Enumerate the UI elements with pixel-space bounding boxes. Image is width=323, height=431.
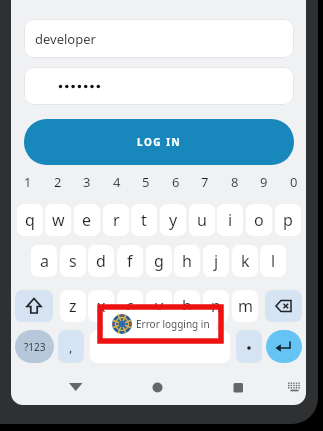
button[interactable]: x [88, 290, 114, 322]
button[interactable]: n [203, 290, 229, 322]
staticText: o [254, 209, 264, 231]
button[interactable]: 0 [280, 168, 306, 196]
staticText: 7 [201, 173, 209, 191]
staticText: 0 [290, 173, 298, 191]
staticText: i [228, 209, 233, 231]
button[interactable]: l [260, 245, 286, 277]
staticText: f [127, 250, 133, 272]
button[interactable] [15, 290, 53, 322]
button[interactable]: , [58, 330, 84, 363]
staticText: 5 [142, 173, 150, 191]
staticText: r [113, 209, 120, 231]
staticText: l [271, 250, 276, 272]
staticText: h [182, 250, 192, 272]
button[interactable]: Error logging in [103, 310, 217, 338]
staticText: e [82, 209, 92, 231]
button[interactable]: 4 [103, 168, 131, 196]
button[interactable]: 9 [250, 168, 278, 196]
staticText: s [69, 250, 77, 272]
button[interactable]: u [189, 204, 215, 236]
button[interactable]: r [103, 204, 129, 236]
staticText: 2 [54, 173, 62, 191]
button[interactable]: y [160, 204, 186, 236]
button[interactable]: LOG IN [24, 119, 294, 165]
button[interactable]: f [117, 245, 143, 277]
button[interactable]: k [232, 245, 258, 277]
button[interactable] [90, 330, 230, 363]
button[interactable]: 8 [221, 168, 249, 196]
button[interactable] [265, 290, 302, 322]
button[interactable]: m [232, 290, 258, 322]
staticText: g [154, 250, 164, 272]
staticText: 6 [172, 173, 180, 191]
button[interactable] [138, 375, 178, 401]
staticText: p [283, 209, 293, 231]
staticText: v [155, 295, 164, 317]
staticText: 1 [24, 173, 32, 191]
button[interactable]: h [174, 245, 200, 277]
button[interactable]: ?123 [15, 330, 54, 363]
staticText: z [69, 295, 77, 317]
button[interactable]: q [17, 204, 43, 236]
button[interactable] [236, 330, 262, 363]
staticText: 4 [113, 173, 121, 191]
staticText: n [211, 295, 221, 317]
button[interactable]: z [60, 290, 86, 322]
button[interactable]: p [275, 204, 301, 236]
staticText: developer [35, 30, 96, 48]
button[interactable]: t [131, 204, 157, 236]
staticText: 3 [83, 173, 91, 191]
button[interactable]: 6 [162, 168, 190, 196]
staticText: d [96, 250, 106, 272]
staticText: q [25, 209, 35, 231]
button[interactable]: v [146, 290, 172, 322]
button[interactable]: 3 [73, 168, 101, 196]
staticText: b [182, 295, 192, 317]
button[interactable]: a [31, 245, 57, 277]
staticText: x [97, 295, 106, 317]
button[interactable]: 7 [191, 168, 219, 196]
button[interactable]: d [88, 245, 114, 277]
button[interactable] [24, 67, 294, 105]
button[interactable]: 1 [14, 168, 42, 196]
button[interactable]: j [203, 245, 229, 277]
staticText: t [141, 209, 147, 231]
button[interactable]: s [60, 245, 86, 277]
button[interactable]: c [117, 290, 143, 322]
button[interactable]: i [217, 204, 243, 236]
button[interactable] [218, 375, 258, 401]
staticText: m [238, 295, 253, 317]
button[interactable] [266, 330, 302, 363]
staticText: y [169, 209, 178, 231]
staticText: w [52, 209, 65, 231]
staticText: c [126, 295, 134, 317]
staticText: a [40, 250, 49, 272]
button[interactable]: 2 [44, 168, 72, 196]
staticText: ?123 [24, 340, 46, 354]
staticText: 9 [260, 173, 268, 191]
button[interactable]: o [246, 204, 272, 236]
staticText: Error logging in [136, 317, 210, 331]
staticText: u [197, 209, 207, 231]
staticText: 8 [231, 173, 239, 191]
button[interactable]: e [74, 204, 100, 236]
staticText: LOG IN [137, 135, 182, 149]
button[interactable]: 5 [132, 168, 160, 196]
staticText: k [241, 250, 250, 272]
button[interactable]: b [174, 290, 200, 322]
button[interactable]: g [146, 245, 172, 277]
staticText: j [214, 250, 219, 272]
button[interactable] [276, 375, 306, 401]
staticText: , [69, 338, 73, 356]
button[interactable]: w [45, 204, 71, 236]
button[interactable] [56, 375, 96, 401]
button[interactable]: developer [24, 19, 294, 58]
